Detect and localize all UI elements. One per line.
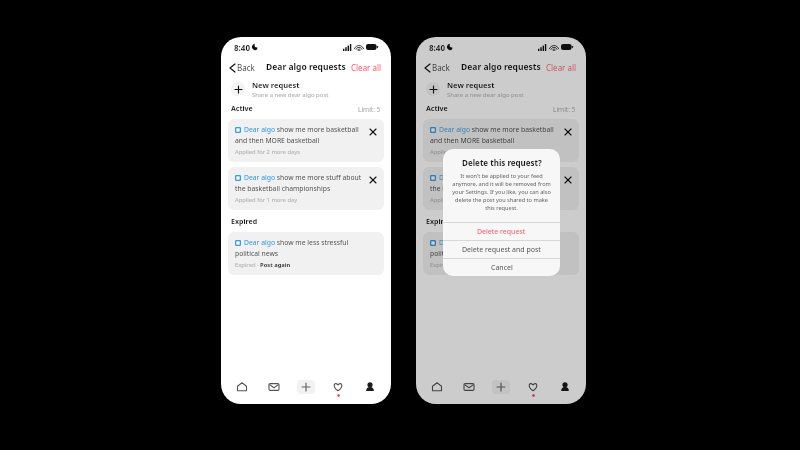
button[interactable]: Home xyxy=(428,379,446,395)
staticText: Share a new dear algo post xyxy=(447,91,524,99)
staticText: Expired xyxy=(231,217,258,227)
button[interactable]: New request xyxy=(221,77,391,101)
staticText: Dear algo show me less stressful xyxy=(439,238,544,247)
staticText: political news xyxy=(430,249,474,258)
staticText: Share a new dear algo post xyxy=(252,91,329,99)
button[interactable]: Dear algo show me less stressful xyxy=(228,232,384,275)
staticText: Expired · Post again xyxy=(235,261,291,269)
staticText: Dear algo show me more basketball xyxy=(244,125,359,134)
button[interactable]: Back xyxy=(228,60,257,75)
button[interactable]: Home xyxy=(233,379,251,395)
staticText: 8:40 xyxy=(429,42,445,53)
staticText: Dear algo requests xyxy=(266,61,346,73)
button[interactable]: Remove request xyxy=(366,173,380,187)
staticText: the basketball championships xyxy=(235,184,331,193)
button[interactable]: Cancel xyxy=(443,259,560,276)
staticText: Delete this request? xyxy=(462,157,542,168)
staticText: Clear all xyxy=(351,62,382,73)
staticText: Applied for 1 more day xyxy=(430,196,493,204)
staticText: Applied for 1 more day xyxy=(235,196,298,204)
staticText: Applied for 2 more days xyxy=(430,148,495,156)
staticText: political news xyxy=(235,249,279,258)
button[interactable]: Profile xyxy=(556,379,574,395)
staticText: Dear algo show me more stuff about xyxy=(439,173,557,182)
button[interactable]: Likes xyxy=(524,379,542,395)
button[interactable]: New request xyxy=(416,77,586,101)
staticText: and then MORE basketball xyxy=(430,136,515,145)
button[interactable]: Dear algo show me more basketball xyxy=(423,119,579,162)
staticText: and then MORE basketball xyxy=(235,136,320,145)
button[interactable]: Dear algo show me more stuff about xyxy=(423,167,579,210)
staticText: New request xyxy=(252,80,300,90)
staticText: Clear all xyxy=(546,62,577,73)
button[interactable]: Profile xyxy=(361,379,379,395)
staticText: Delete request and post xyxy=(462,245,541,255)
staticText: Limit: 5 xyxy=(358,105,381,114)
button[interactable]: Messages xyxy=(265,379,283,395)
button[interactable]: Create xyxy=(297,380,315,394)
button[interactable]: Delete request and post xyxy=(443,241,560,258)
button[interactable]: Create xyxy=(492,380,510,394)
staticText: Active xyxy=(426,104,448,114)
button[interactable]: Remove request xyxy=(366,125,380,139)
staticText: Limit: 5 xyxy=(553,105,576,114)
staticText: Dear algo show me more basketball xyxy=(439,125,554,134)
staticText: Back xyxy=(237,62,255,73)
staticText: Cancel xyxy=(491,263,513,273)
staticText: the basketball championships xyxy=(430,184,526,193)
button[interactable]: Dear algo show me less stressful xyxy=(423,232,579,275)
staticText: It won't be applied to your feed anymore… xyxy=(452,172,551,212)
button[interactable]: Messages xyxy=(460,379,478,395)
staticText: Expired xyxy=(426,217,453,227)
staticText: Dear algo show me less stressful xyxy=(244,238,349,247)
staticText: Dear algo show me more stuff about xyxy=(244,173,362,182)
button[interactable]: Dear algo show me more stuff about xyxy=(228,167,384,210)
button[interactable]: Dear algo show me more basketball xyxy=(228,119,384,162)
button[interactable]: Delete request xyxy=(443,223,560,240)
staticText: 8:40 xyxy=(234,42,250,53)
staticText: New request xyxy=(447,80,495,90)
staticText: Delete request xyxy=(477,227,526,237)
button[interactable]: Clear all xyxy=(544,60,579,75)
button[interactable]: Clear all xyxy=(349,60,384,75)
staticText: Active xyxy=(231,104,253,114)
staticText: Expired · Post again xyxy=(430,261,486,269)
button[interactable]: Remove request xyxy=(561,125,575,139)
button[interactable]: Back xyxy=(423,60,452,75)
button[interactable]: Remove request xyxy=(561,173,575,187)
staticText: Dear algo requests xyxy=(461,61,541,73)
button[interactable]: Likes xyxy=(329,379,347,395)
staticText: Applied for 2 more days xyxy=(235,148,300,156)
staticText: Back xyxy=(432,62,450,73)
